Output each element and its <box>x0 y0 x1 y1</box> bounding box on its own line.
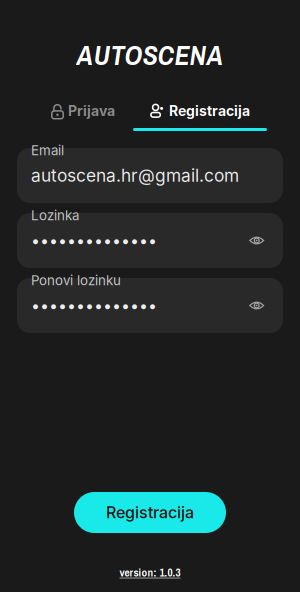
button[interactable]: version: 1.0.3 <box>119 533 180 592</box>
button[interactable]: Registracija <box>133 100 267 131</box>
staticText: Prijava <box>68 102 115 119</box>
staticText: Lozinka <box>31 207 79 223</box>
button[interactable]: Registracija <box>74 492 226 533</box>
staticText: Registracija <box>106 503 194 522</box>
button[interactable]: Prijava <box>16 100 150 131</box>
staticText: version: 1.0.3 <box>119 565 180 580</box>
staticText: Email <box>31 142 64 158</box>
staticText: Registracija <box>169 102 250 119</box>
staticText: •••••••••••••• <box>31 296 157 315</box>
staticText: AUTOSCENA <box>76 36 223 74</box>
button[interactable]: Show password <box>240 221 274 259</box>
staticText: •••••••••••••• <box>31 231 157 250</box>
staticText: Ponovi lozinku <box>31 272 121 288</box>
staticText: autoscena.hr@gmail.com <box>31 165 239 186</box>
button[interactable]: Show password <box>240 286 274 324</box>
